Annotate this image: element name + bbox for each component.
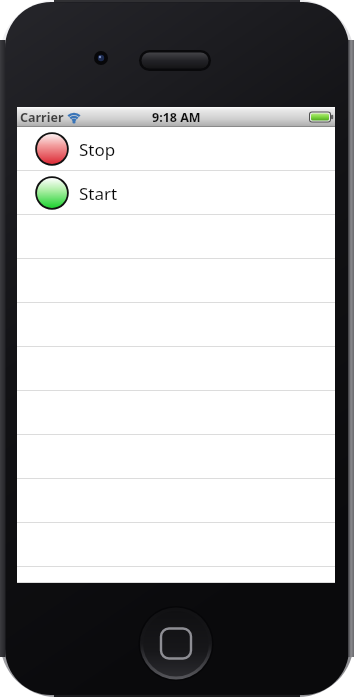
staticText: Start [79,182,118,205]
staticText: Stop [79,138,116,161]
staticText: Carrier [20,109,64,126]
button[interactable]: Stop [17,127,335,171]
button[interactable]: Start [17,171,335,215]
staticText: 9:18 AM [152,109,201,126]
